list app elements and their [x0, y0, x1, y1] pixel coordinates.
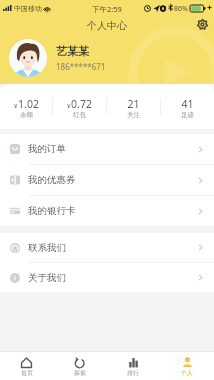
- button[interactable]: 关于我们: [0, 263, 214, 292]
- staticText: 我的订单: [28, 143, 66, 155]
- staticText: 联系我们: [28, 242, 66, 254]
- staticText: 关于我们: [28, 272, 66, 284]
- staticText: 我的银行卡: [28, 205, 76, 217]
- button[interactable]: 我的订单: [0, 134, 214, 164]
- staticText: ¥: [14, 102, 18, 110]
- staticText: 余额: [20, 111, 33, 119]
- button[interactable]: 用户头像: [9, 39, 47, 77]
- staticText: 0.72: [71, 97, 92, 111]
- button[interactable]: 探索: [53, 352, 106, 380]
- staticText: 21: [127, 97, 140, 111]
- staticText: 足迹: [181, 111, 194, 119]
- staticText: 下午2:59: [92, 4, 122, 14]
- staticText: 41: [181, 97, 194, 111]
- staticText: 关注: [127, 111, 140, 119]
- button[interactable]: 联系我们: [0, 233, 214, 262]
- button[interactable]: 41: [161, 84, 214, 128]
- staticText: 个人中心: [87, 19, 127, 32]
- staticText: 红包: [73, 111, 86, 119]
- staticText: 我的优惠券: [28, 174, 76, 186]
- staticText: ¥: [67, 102, 71, 110]
- staticText: 排行: [127, 369, 139, 377]
- button[interactable]: 我的优惠券: [0, 165, 214, 195]
- button[interactable]: 设置: [192, 14, 212, 34]
- staticText: 186*****671: [56, 61, 106, 72]
- button[interactable]: 个人: [160, 352, 214, 380]
- staticText: 1.02: [18, 97, 39, 111]
- staticText: 86%: [174, 4, 188, 14]
- staticText: 中国移动: [14, 4, 42, 13]
- button[interactable]: 我的银行卡: [0, 196, 214, 226]
- staticText: 首页: [21, 369, 33, 377]
- staticText: 艺某某: [56, 44, 89, 58]
- button[interactable]: 排行: [106, 352, 160, 380]
- button[interactable]: ¥: [53, 84, 106, 128]
- button[interactable]: 首页: [0, 352, 53, 380]
- staticText: 探索: [74, 369, 86, 377]
- button[interactable]: 21: [107, 84, 160, 128]
- button[interactable]: ¥: [0, 84, 52, 128]
- staticText: 个人: [181, 369, 193, 377]
